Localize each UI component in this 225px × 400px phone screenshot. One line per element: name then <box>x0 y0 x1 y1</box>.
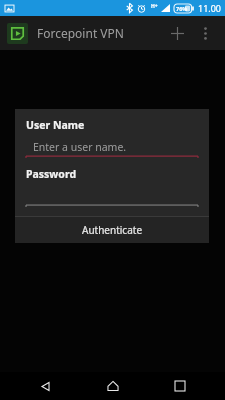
staticText: User Name <box>26 118 85 132</box>
button[interactable]: Authenticate <box>15 217 209 243</box>
staticText: Authenticate <box>82 223 143 237</box>
button[interactable]: Back <box>23 372 67 400</box>
button[interactable]: Home <box>91 372 135 400</box>
staticText: 76% <box>176 5 188 12</box>
button[interactable]: More options <box>192 20 218 46</box>
staticText: H+ <box>151 3 158 10</box>
staticText: Enter a user name. <box>33 140 127 154</box>
staticText: Forcepoint VPN <box>37 25 124 41</box>
button[interactable]: Add <box>162 18 192 48</box>
button[interactable]: Enter a user name. <box>26 138 198 155</box>
button[interactable]: Recent apps <box>158 372 202 400</box>
button[interactable]: App icon <box>7 23 28 44</box>
staticText: 11.00 <box>198 2 222 14</box>
staticText: Password <box>26 167 77 181</box>
